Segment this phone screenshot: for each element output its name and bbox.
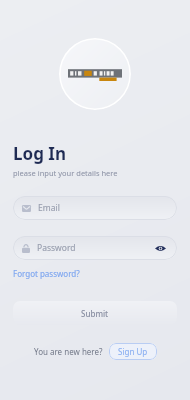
staticText: please input your details here (13, 168, 118, 178)
button[interactable]: Password (13, 236, 177, 260)
button[interactable]: Submit (13, 301, 177, 325)
staticText: Sign Up (118, 346, 148, 357)
staticText: Submit (81, 308, 109, 319)
button[interactable]: Forgot password? (13, 267, 80, 280)
button[interactable]: Email (13, 196, 177, 220)
staticText: Log In (13, 142, 66, 165)
button[interactable]: Show password (152, 240, 168, 256)
staticText: Email (38, 202, 60, 214)
staticText: Forgot password? (13, 268, 80, 279)
staticText: You are new here? (34, 346, 103, 357)
button[interactable]: Sign Up (109, 343, 157, 360)
staticText: Password (37, 242, 152, 254)
